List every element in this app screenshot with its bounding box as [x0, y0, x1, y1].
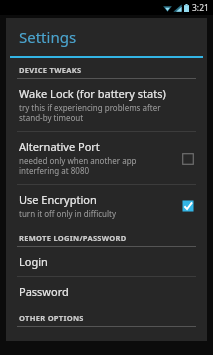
staticText: DEVICE TWEAKS [19, 65, 82, 75]
staticText: Wake Lock (for battery stats) [19, 86, 166, 101]
button[interactable]: Login [6, 247, 207, 276]
staticText: REMOTE LOGIN/PASSWORD [19, 233, 127, 243]
button[interactable]: Unchecked [179, 150, 196, 167]
staticText: OTHER OPTIONS [19, 313, 84, 323]
staticText: 3:21 [192, 2, 209, 14]
staticText: Password [19, 284, 69, 299]
button[interactable]: Password [6, 277, 207, 306]
staticText: turn it off only in difficulty [19, 208, 117, 219]
button[interactable]: Wake Lock (for battery stats) [6, 79, 207, 131]
staticText: Use Encryption [19, 192, 97, 207]
staticText: needed only when another app interfering… [19, 155, 137, 177]
button[interactable]: Checked [179, 197, 196, 214]
button[interactable]: Use Encryption [6, 185, 207, 226]
other: Signal [173, 4, 182, 12]
button[interactable]: Alternative Port [6, 132, 207, 184]
staticText: try this if experiencing problems after … [19, 102, 161, 124]
staticText: Login [19, 254, 48, 269]
staticText: Settings [19, 27, 77, 47]
staticText: Alternative Port [19, 139, 100, 154]
other: Battery [184, 4, 189, 12]
other: Wi-Fi [163, 4, 172, 12]
